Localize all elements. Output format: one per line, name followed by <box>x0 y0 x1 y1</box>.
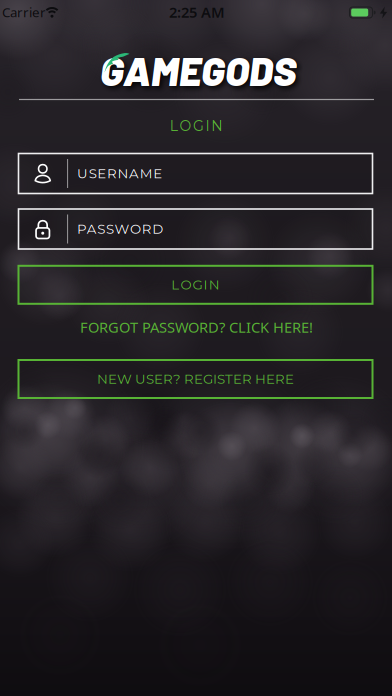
staticText: 2:25 AM <box>169 2 225 22</box>
staticText: USERNAME <box>77 165 162 182</box>
staticText: LOGIN <box>170 117 222 135</box>
staticText: PASSWORD <box>77 221 163 237</box>
button[interactable]: PASSWORD <box>18 209 372 249</box>
button[interactable]: FORGOT PASSWORD? CLICK HERE! <box>80 317 313 337</box>
staticText: NEW USER? REGISTER HERE <box>97 371 294 387</box>
button[interactable]: NEW USER? REGISTER HERE <box>18 360 372 398</box>
button[interactable]: USERNAME <box>18 153 372 193</box>
staticText: GAMEGODS <box>100 46 296 94</box>
button[interactable]: LOGIN <box>18 266 372 304</box>
staticText: FORGOT PASSWORD? CLICK HERE! <box>80 317 313 337</box>
staticText: Carrier <box>2 3 46 21</box>
staticText: LOGIN <box>171 277 220 293</box>
